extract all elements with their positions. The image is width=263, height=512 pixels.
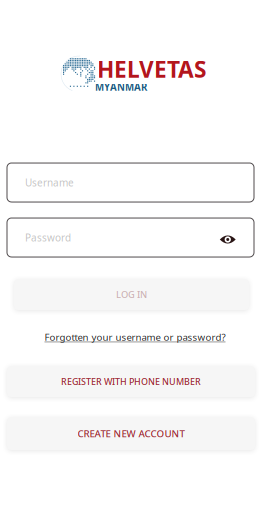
staticText: Username (25, 176, 74, 189)
button[interactable]: Password (7, 218, 254, 257)
staticText: LOG IN (116, 288, 147, 301)
button[interactable]: Forgotten your username or password? (35, 330, 235, 344)
staticText: Forgotten your username or password? (44, 330, 225, 344)
staticText: CREATE NEW ACCOUNT (77, 427, 184, 440)
staticText: MYANMAR (95, 80, 147, 94)
button[interactable]: Username (7, 163, 254, 202)
button[interactable]: CREATE NEW ACCOUNT (7, 417, 255, 450)
staticText: REGISTER WITH PHONE NUMBER (61, 375, 201, 388)
button[interactable]: LOG IN (14, 279, 249, 310)
staticText: HELVETAS (97, 54, 206, 84)
button[interactable]: REGISTER WITH PHONE NUMBER (7, 366, 255, 397)
staticText: Password (25, 231, 71, 244)
